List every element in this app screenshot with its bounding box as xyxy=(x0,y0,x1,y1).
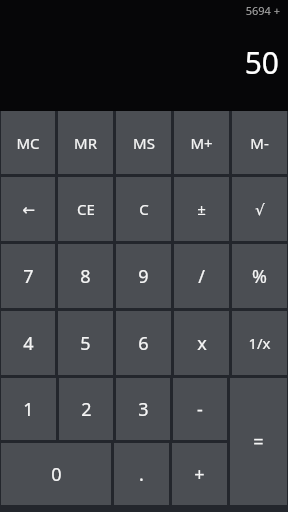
button[interactable]: M- xyxy=(232,111,287,174)
staticText: 1 xyxy=(23,397,34,422)
button[interactable]: C xyxy=(116,177,171,241)
staticText: 2 xyxy=(81,397,92,422)
button[interactable]: 5 xyxy=(58,311,113,375)
staticText: 1/x xyxy=(248,333,271,353)
staticText: ± xyxy=(197,199,206,219)
staticText: % xyxy=(252,264,267,289)
button[interactable]: 8 xyxy=(58,244,113,308)
button[interactable]: 1 xyxy=(1,378,56,440)
button[interactable]: . xyxy=(114,443,169,505)
staticText: MS xyxy=(133,133,155,153)
staticText: M+ xyxy=(190,133,213,153)
staticText: M- xyxy=(250,133,269,153)
staticText: + xyxy=(194,462,205,487)
staticText: 0 xyxy=(51,462,62,487)
button[interactable]: M+ xyxy=(174,111,229,174)
button[interactable]: % xyxy=(232,244,287,308)
button[interactable]: MC xyxy=(1,111,55,174)
button[interactable]: + xyxy=(172,443,227,505)
button[interactable]: x xyxy=(174,311,229,375)
button[interactable]: 0 xyxy=(1,443,111,505)
button[interactable]: 4 xyxy=(1,311,55,375)
staticText: √ xyxy=(255,201,265,218)
staticText: 5694 + xyxy=(245,3,280,18)
staticText: 50 xyxy=(244,42,279,83)
button[interactable]: ± xyxy=(174,177,229,241)
button[interactable]: 6 xyxy=(116,311,171,375)
staticText: MR xyxy=(74,133,97,153)
button[interactable]: 1/x xyxy=(232,311,287,375)
button[interactable]: ← xyxy=(1,177,55,241)
staticText: - xyxy=(197,397,203,422)
staticText: x xyxy=(197,331,207,356)
button[interactable]: = xyxy=(230,378,287,505)
button[interactable]: - xyxy=(173,378,227,440)
button[interactable]: 9 xyxy=(116,244,171,308)
button[interactable]: √ xyxy=(232,177,287,241)
staticText: 7 xyxy=(23,264,34,289)
button[interactable]: 2 xyxy=(59,378,113,440)
staticText: 4 xyxy=(23,331,34,356)
staticText: = xyxy=(253,429,264,454)
button[interactable]: / xyxy=(174,244,229,308)
staticText: 3 xyxy=(138,397,149,422)
staticText: 5 xyxy=(80,331,91,356)
staticText: . xyxy=(139,462,144,487)
button[interactable]: MS xyxy=(116,111,171,174)
staticText: 6 xyxy=(138,331,149,356)
staticText: MC xyxy=(16,133,40,153)
staticText: / xyxy=(198,264,205,289)
button[interactable]: 3 xyxy=(116,378,170,440)
staticText: 8 xyxy=(80,264,91,289)
staticText: ← xyxy=(22,201,35,218)
staticText: CE xyxy=(77,199,95,219)
staticText: 9 xyxy=(138,264,149,289)
button[interactable]: 7 xyxy=(1,244,55,308)
button[interactable]: MR xyxy=(58,111,113,174)
button[interactable]: CE xyxy=(58,177,113,241)
staticText: C xyxy=(139,199,149,219)
